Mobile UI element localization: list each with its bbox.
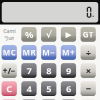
staticText: M+: [62, 47, 75, 58]
button[interactable]: M−: [41, 45, 56, 60]
staticText: °Jun: [4, 34, 14, 41]
button[interactable]: M+: [61, 45, 76, 60]
button[interactable]: +/−: [2, 63, 17, 78]
staticText: √: [46, 29, 52, 40]
button[interactable]: ÷: [81, 45, 96, 60]
staticText: MC: [3, 47, 16, 58]
staticText: −: [86, 82, 91, 95]
button[interactable]: 5: [41, 81, 56, 96]
button[interactable]: GT: [81, 27, 96, 42]
button[interactable]: MC: [2, 45, 17, 60]
staticText: ÷: [86, 46, 91, 59]
staticText: ▶: [65, 30, 71, 39]
button[interactable]: 7: [21, 63, 37, 78]
staticText: ×: [86, 64, 91, 77]
button[interactable]: −: [81, 81, 96, 96]
staticText: %: [25, 28, 33, 41]
staticText: 7: [26, 64, 31, 77]
button[interactable]: 9: [61, 63, 76, 78]
staticText: 6: [66, 82, 71, 95]
button[interactable]: 8: [41, 63, 56, 78]
staticText: 9: [66, 64, 71, 77]
staticText: 5: [46, 82, 51, 95]
button[interactable]: C: [2, 81, 17, 96]
button[interactable]: √: [41, 27, 56, 42]
staticText: +/−: [3, 65, 16, 76]
button[interactable]: 4: [21, 81, 37, 96]
staticText: GT: [83, 29, 94, 40]
button[interactable]: ▶: [61, 27, 76, 42]
staticText: M−: [42, 47, 55, 58]
button[interactable]: 6: [61, 81, 76, 96]
staticText: 8: [46, 64, 51, 77]
staticText: C: [6, 82, 12, 95]
staticText: Cami: [3, 27, 15, 34]
button[interactable]: %: [21, 27, 37, 42]
staticText: 4: [26, 82, 31, 95]
staticText: MR: [22, 47, 35, 58]
button[interactable]: ×: [81, 63, 96, 78]
button[interactable]: MR: [21, 45, 37, 60]
